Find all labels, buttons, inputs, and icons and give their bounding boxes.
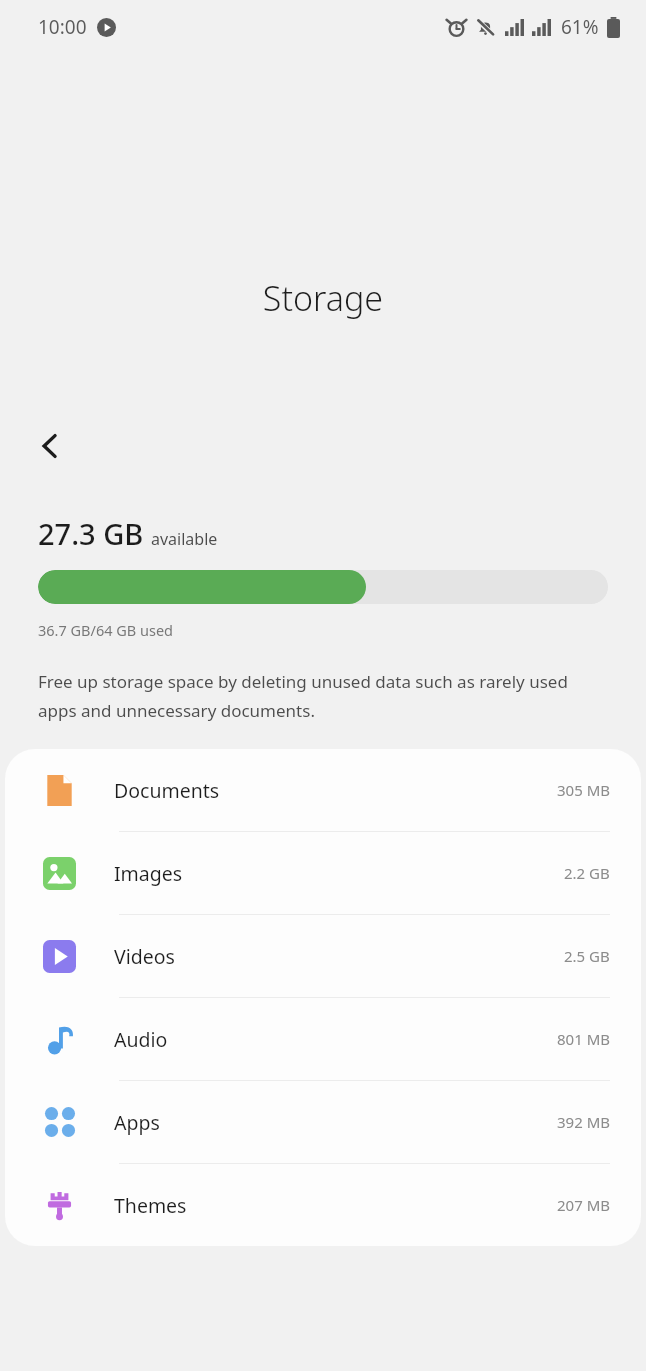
staticText: Apps [114,1109,160,1136]
staticText: 305 MB [557,780,610,800]
staticText: Themes [114,1192,187,1219]
button[interactable]: Images [5,832,641,915]
button[interactable]: Videos [5,915,641,998]
button[interactable]: Themes [5,1164,641,1246]
staticText: Audio [114,1026,168,1053]
staticText: 10:00 [38,14,87,40]
staticText: Documents [114,777,220,804]
staticText: 207 MB [557,1195,610,1215]
staticText: 2.2 GB [564,863,610,883]
staticText: Videos [114,943,175,970]
staticText: available [151,528,218,550]
button[interactable]: Documents [5,749,641,832]
button[interactable]: Navigate up [16,412,84,480]
staticText: 801 MB [557,1029,610,1049]
staticText: 392 MB [557,1112,610,1132]
staticText: 36.7 GB/64 GB used [38,620,174,640]
staticText: Storage [0,275,646,321]
staticText: 2.5 GB [564,946,610,966]
staticText: 27.3 GB [38,514,144,553]
staticText: Free up storage space by deleting unused… [38,670,604,722]
button[interactable]: Apps [5,1081,641,1164]
staticText: Images [114,860,183,887]
button[interactable]: Audio [5,998,641,1081]
staticText: 61% [561,14,599,40]
